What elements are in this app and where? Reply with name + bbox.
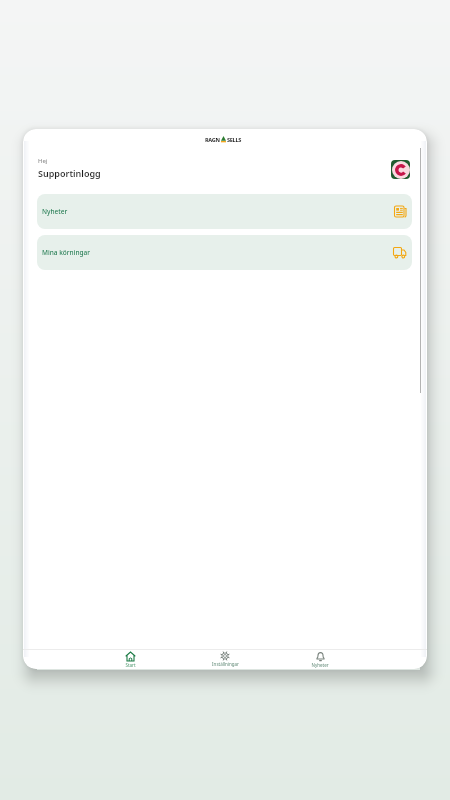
button[interactable]: Nyheter <box>290 651 350 668</box>
button[interactable] <box>391 160 410 179</box>
staticText: SELLS <box>227 136 242 143</box>
staticText: Nyheter <box>42 207 68 216</box>
button[interactable]: Inställningar <box>195 651 255 667</box>
staticText: RAGN <box>205 136 220 143</box>
button[interactable]: Nyheter <box>37 194 412 229</box>
staticText: Mina körningar <box>42 248 90 257</box>
staticText: Start <box>125 662 136 668</box>
button[interactable]: Start <box>100 651 160 668</box>
staticText: Supportinlogg <box>38 167 101 179</box>
staticText: Nyheter <box>311 662 329 668</box>
staticText: Hej <box>38 157 48 165</box>
button[interactable]: Mina körningar <box>37 235 412 270</box>
staticText: Inställningar <box>212 661 239 667</box>
